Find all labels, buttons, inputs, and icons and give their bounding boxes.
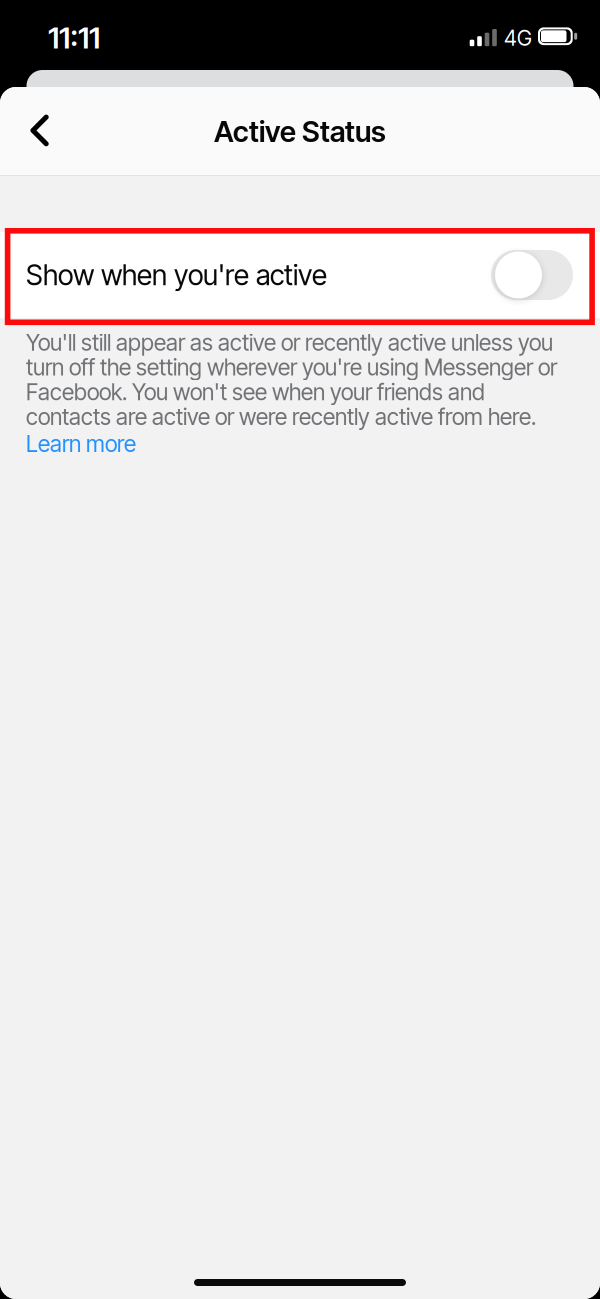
button[interactable]: Learn more: [0, 429, 148, 458]
staticText: You'll still appear as active or recentl…: [26, 330, 557, 429]
staticText: Show when you're active: [26, 258, 327, 292]
button[interactable]: Show when you're active: [0, 232, 600, 318]
button[interactable]: Back: [15, 101, 67, 161]
staticText: 4G: [504, 25, 532, 51]
staticText: Learn more: [26, 431, 136, 456]
staticText: Active Status: [214, 114, 386, 149]
staticText: 11:11: [48, 20, 100, 55]
